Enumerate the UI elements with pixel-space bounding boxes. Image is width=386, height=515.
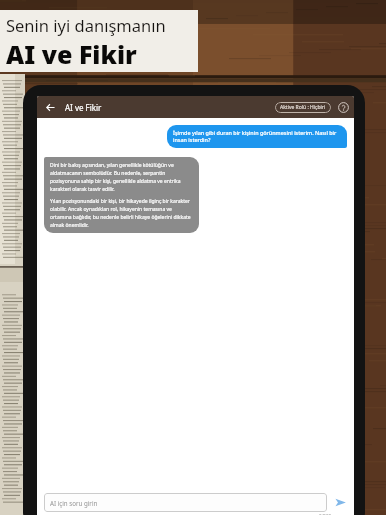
staticText: Aktive Rolü : Hiçbiri [280,104,326,111]
button[interactable]: Geri [42,99,58,115]
staticText: Dini bir bakış açısından, yılan genellik… [50,162,193,192]
staticText: Senin iyi danışmanın [6,14,166,36]
staticText: Yılan pozisyonundaki bir kişi, bir hikay… [50,198,193,228]
button[interactable]: Gönder [332,494,349,511]
button[interactable]: Dini bir bakış açısından, yılan genellik… [44,157,199,233]
staticText: İşimde yılan gibi duran bir kişinin görü… [173,129,341,144]
staticText: AI ve Fikir [6,37,137,71]
staticText: AI için soru girin [50,499,98,507]
button[interactable]: Aktive Rolü : Hiçbiri [275,102,331,113]
staticText: 0/500 [319,513,332,515]
button[interactable]: İşimde yılan gibi duran bir kişinin görü… [167,125,347,148]
button[interactable]: Yardım [336,100,350,114]
staticText: AI ve Fikir [65,102,102,113]
button[interactable]: AI için soru girin [44,493,327,512]
